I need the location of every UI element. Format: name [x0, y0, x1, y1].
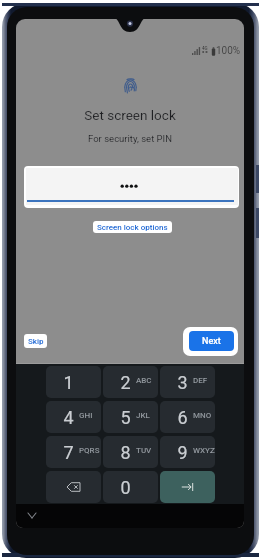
staticText: GHI: [79, 411, 93, 420]
button[interactable]: 2: [103, 366, 158, 398]
staticText: Screen lock options: [97, 223, 168, 232]
staticText: PQRS: [79, 446, 100, 455]
staticText: 4G: [202, 46, 208, 51]
button[interactable]: 7: [46, 436, 101, 468]
button[interactable]: 4: [46, 401, 101, 433]
button[interactable]: Skip: [24, 334, 47, 348]
button[interactable]: 8: [103, 436, 158, 468]
button[interactable]: Delete: [46, 471, 101, 503]
staticText: 6: [160, 407, 210, 428]
staticText: JKL: [136, 411, 150, 420]
staticText: ABC: [136, 376, 152, 385]
staticText: MNO: [193, 411, 212, 420]
staticText: 7: [46, 442, 96, 463]
staticText: WXYZ: [193, 446, 215, 455]
staticText: 100%: [216, 45, 241, 56]
staticText: Skip: [28, 337, 44, 346]
staticText: 3: [160, 372, 210, 393]
staticText: TUV: [136, 446, 152, 455]
staticText: 1: [46, 372, 96, 393]
button[interactable]: Hide keyboard: [24, 508, 40, 522]
staticText: 5: [103, 407, 153, 428]
button[interactable]: 0: [103, 471, 158, 503]
staticText: 9: [160, 442, 210, 463]
staticText: Set screen lock: [16, 107, 244, 123]
staticText: Next: [202, 336, 221, 347]
staticText: DEF: [193, 376, 208, 385]
button[interactable]: [24, 166, 239, 208]
button[interactable]: Next: [189, 331, 234, 351]
staticText: For security, set PIN: [16, 133, 244, 144]
button[interactable]: 9: [160, 436, 215, 468]
button[interactable]: 3: [160, 366, 215, 398]
staticText: 8: [103, 442, 153, 463]
staticText: 0: [103, 477, 153, 498]
button[interactable]: Enter: [160, 471, 215, 503]
button[interactable]: 1: [46, 366, 101, 398]
button[interactable]: Screen lock options: [93, 221, 172, 233]
staticText: 2: [103, 372, 153, 393]
button[interactable]: 5: [103, 401, 158, 433]
button[interactable]: 6: [160, 401, 215, 433]
staticText: 4: [46, 407, 96, 428]
